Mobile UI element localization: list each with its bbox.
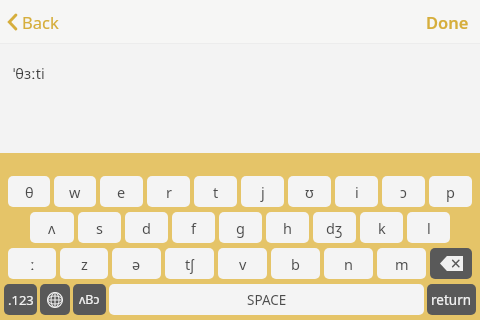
staticText: .123: [8, 291, 34, 309]
button[interactable]: ʊ: [288, 176, 331, 207]
staticText: d: [142, 218, 151, 238]
button[interactable]: return: [427, 284, 476, 315]
button[interactable]: f: [172, 212, 215, 243]
staticText: θ: [25, 182, 34, 202]
button[interactable]: .123: [4, 284, 37, 315]
button[interactable]: d: [125, 212, 168, 243]
button[interactable]: s: [78, 212, 121, 243]
staticText: Back: [22, 11, 59, 33]
button[interactable]: Back: [0, 6, 71, 38]
staticText: ˈθɜːti: [13, 63, 45, 83]
button[interactable]: Backspace: [430, 248, 472, 279]
button[interactable]: k: [360, 212, 403, 243]
button[interactable]: g: [219, 212, 262, 243]
button[interactable]: ə: [112, 248, 161, 279]
button[interactable]: r: [147, 176, 190, 207]
staticText: ʊ: [305, 182, 314, 202]
button[interactable]: m: [377, 248, 426, 279]
staticText: s: [96, 218, 103, 238]
staticText: i: [355, 182, 359, 202]
staticText: r: [166, 182, 172, 202]
button[interactable]: ː: [8, 248, 56, 279]
button[interactable]: dʒ: [313, 212, 356, 243]
button[interactable]: Done: [415, 5, 480, 39]
button[interactable]: h: [266, 212, 309, 243]
button[interactable]: i: [335, 176, 378, 207]
button[interactable]: ˈθɜːti: [0, 44, 480, 153]
staticText: Done: [426, 11, 469, 33]
button[interactable]: θ: [8, 176, 50, 207]
staticText: m: [395, 254, 409, 274]
staticText: k: [378, 218, 386, 238]
staticText: ː: [30, 254, 35, 274]
staticText: ɔ: [400, 182, 407, 202]
button[interactable]: ɔ: [382, 176, 425, 207]
staticText: l: [427, 218, 431, 238]
staticText: ʌ: [48, 218, 56, 238]
staticText: SPACE: [247, 291, 287, 309]
staticText: return: [431, 291, 472, 309]
button[interactable]: w: [54, 176, 96, 207]
staticText: h: [283, 218, 292, 238]
staticText: z: [81, 254, 88, 274]
staticText: n: [344, 254, 353, 274]
staticText: ə: [132, 254, 141, 274]
button[interactable]: j: [241, 176, 284, 207]
staticText: dʒ: [326, 218, 343, 238]
button[interactable]: v: [218, 248, 267, 279]
button[interactable]: tʃ: [165, 248, 214, 279]
staticText: v: [239, 254, 247, 274]
staticText: j: [261, 182, 265, 202]
button[interactable]: n: [324, 248, 373, 279]
staticText: t: [213, 182, 219, 202]
button[interactable]: SPACE: [109, 284, 424, 315]
button[interactable]: Switch keyboard: [40, 284, 70, 315]
button[interactable]: z: [60, 248, 108, 279]
button[interactable]: p: [429, 176, 472, 207]
staticText: e: [117, 182, 126, 202]
button[interactable]: t: [194, 176, 237, 207]
staticText: ʌBɔ: [79, 291, 100, 308]
button[interactable]: e: [100, 176, 143, 207]
button[interactable]: ʌBɔ: [73, 284, 106, 315]
staticText: f: [191, 218, 196, 238]
button[interactable]: l: [407, 212, 450, 243]
staticText: tʃ: [185, 254, 194, 274]
staticText: p: [446, 182, 455, 202]
button[interactable]: b: [271, 248, 320, 279]
button[interactable]: ʌ: [30, 212, 74, 243]
staticText: w: [69, 182, 81, 202]
staticText: b: [291, 254, 300, 274]
staticText: g: [236, 218, 245, 238]
